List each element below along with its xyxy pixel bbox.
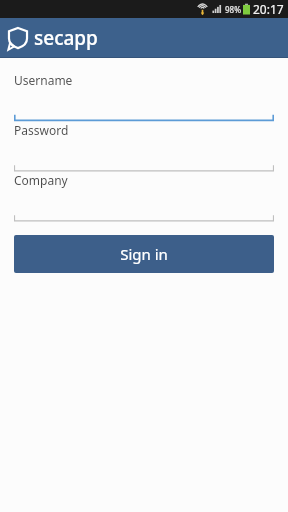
staticText: Password [14,122,69,138]
button[interactable]: Company [0,172,288,222]
button[interactable]: Password [0,122,288,172]
staticText: secapp [34,25,98,51]
button[interactable]: Username [0,72,288,122]
staticText: Company [14,172,68,188]
staticText: 20:17 [253,1,284,17]
button[interactable]: Sign in [14,235,274,273]
staticText: Sign in [120,244,168,264]
staticText: Username [14,72,73,88]
staticText: 98% [225,4,241,15]
